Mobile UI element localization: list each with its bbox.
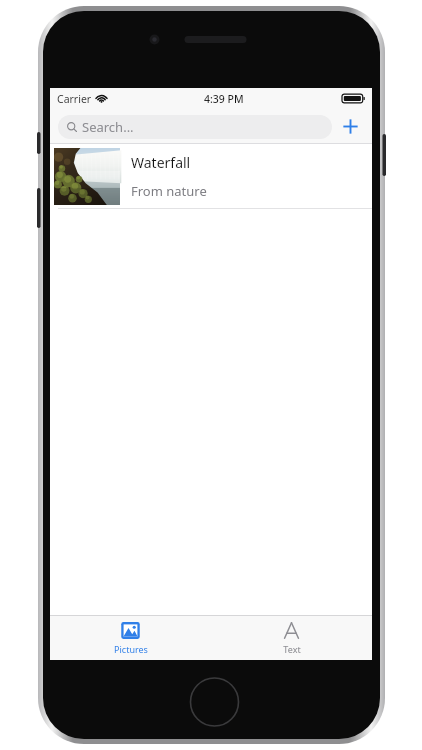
staticText: Pictures: [114, 643, 148, 655]
staticText: Search...: [82, 118, 134, 136]
staticText: Waterfall: [131, 153, 191, 172]
staticText: Carrier: [57, 92, 92, 106]
staticText: From nature: [131, 182, 207, 200]
staticText: 4:39 PM: [204, 92, 244, 106]
button[interactable]: Waterfall: [50, 144, 372, 209]
button[interactable]: Search...: [58, 115, 332, 139]
button[interactable]: Text: [211, 616, 372, 660]
button[interactable]: Add: [332, 109, 368, 144]
staticText: Text: [283, 643, 301, 655]
button[interactable]: Pictures: [50, 616, 211, 660]
